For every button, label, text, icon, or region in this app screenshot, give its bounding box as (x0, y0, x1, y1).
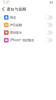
button[interactable]: 推送 (0, 14, 56, 21)
staticText: 声音提醒 (10, 23, 22, 27)
staticText: 推送 (10, 16, 16, 19)
button[interactable]: 声音提醒 (0, 21, 56, 29)
button[interactable]: 震动提示 (0, 29, 56, 36)
staticText: iPhone 消息预览 (10, 38, 34, 42)
staticText: 通知与提醒 (6, 7, 26, 12)
button[interactable]: Back (0, 6, 6, 13)
staticText: ▮▮ (49, 1, 53, 4)
staticText: 震动提示 (10, 31, 22, 34)
button[interactable]: iPhone 消息预览 (0, 36, 56, 44)
staticText: 9:41 (3, 0, 10, 4)
